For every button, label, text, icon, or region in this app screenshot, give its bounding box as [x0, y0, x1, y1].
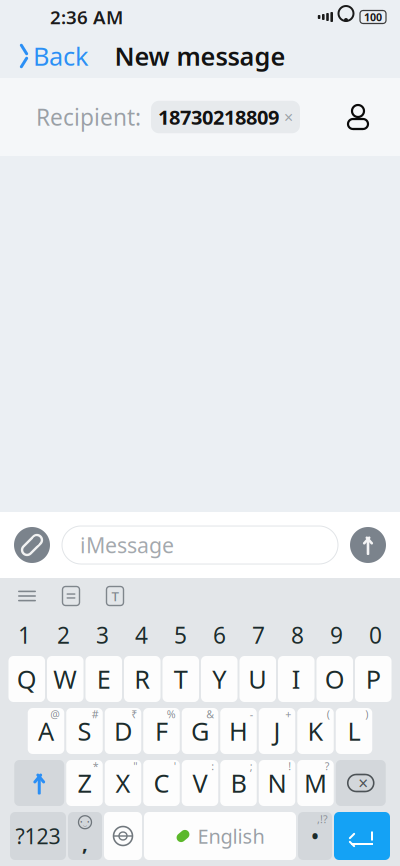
staticText: V: [192, 766, 207, 800]
staticText: ": [133, 759, 137, 773]
button[interactable]: ': [143, 760, 180, 806]
button[interactable]: Send: [346, 523, 390, 567]
button[interactable]: T: [162, 656, 199, 702]
button[interactable]: I: [278, 656, 314, 702]
staticText: 7: [252, 620, 265, 650]
button[interactable]: U: [239, 656, 276, 702]
staticText: Recipient:: [36, 102, 141, 132]
button[interactable]: Q: [8, 656, 45, 702]
button[interactable]: Back: [0, 33, 89, 79]
staticText: %: [167, 707, 176, 721]
staticText: 5: [174, 620, 187, 650]
staticText: E: [97, 662, 111, 696]
staticText: ×: [284, 106, 293, 128]
button[interactable]: 2: [45, 621, 82, 649]
staticText: J: [273, 714, 280, 748]
button[interactable]: Text editing: [102, 583, 128, 609]
staticText: A: [38, 714, 54, 748]
button[interactable]: W: [47, 656, 83, 702]
staticText: 8: [291, 620, 304, 650]
staticText: S: [77, 714, 91, 748]
button[interactable]: #: [66, 708, 103, 754]
button[interactable]: &: [182, 708, 218, 754]
staticText: T: [111, 587, 118, 605]
staticText: 9: [330, 620, 343, 650]
button[interactable]: Recipient field: [0, 78, 400, 156]
button[interactable]: Shift: [14, 760, 64, 806]
button[interactable]: R: [124, 656, 160, 702]
button[interactable]: ": [105, 760, 141, 806]
staticText: M: [304, 766, 327, 800]
staticText: T: [174, 662, 188, 696]
staticText: ?: [325, 759, 330, 773]
button[interactable]: P: [355, 656, 391, 702]
button[interactable]: 1: [6, 621, 43, 649]
staticText: ?123: [15, 822, 60, 850]
staticText: (: [327, 707, 330, 721]
button[interactable]: !: [259, 760, 295, 806]
staticText: *: [93, 759, 99, 773]
staticText: 18730218809: [158, 104, 279, 130]
staticText: ): [365, 707, 368, 721]
button[interactable]: -: [220, 708, 257, 754]
button[interactable]: Backspace: [336, 760, 386, 806]
staticText: 2:36 AM: [50, 5, 123, 29]
button[interactable]: Y: [201, 656, 237, 702]
staticText: -: [250, 707, 253, 721]
button[interactable]: 0: [357, 621, 394, 649]
button[interactable]: Message text field: [62, 526, 338, 564]
button[interactable]: 6: [201, 621, 238, 649]
staticText: 3: [96, 620, 109, 650]
staticText: +: [285, 707, 291, 721]
staticText: Z: [77, 766, 91, 800]
staticText: W: [53, 662, 77, 696]
button[interactable]: Keyboard menu: [14, 583, 40, 609]
button[interactable]: :: [182, 760, 218, 806]
staticText: X: [115, 766, 130, 800]
button[interactable]: ;: [220, 760, 257, 806]
button[interactable]: 8: [279, 621, 316, 649]
staticText: •: [311, 824, 318, 848]
staticText: Q: [17, 662, 37, 696]
button[interactable]: Space: [144, 812, 296, 860]
button[interactable]: Emoji and comma: [68, 812, 102, 860]
button[interactable]: %: [143, 708, 180, 754]
button[interactable]: ?: [297, 760, 334, 806]
button[interactable]: Symbols: [10, 812, 66, 860]
staticText: 4: [135, 620, 148, 650]
staticText: K: [307, 714, 323, 748]
staticText: 0: [369, 620, 382, 650]
staticText: B: [230, 766, 246, 800]
button[interactable]: Add attachment: [10, 523, 54, 567]
staticText: !: [288, 759, 291, 773]
staticText: N: [267, 766, 286, 800]
button[interactable]: 9: [318, 621, 355, 649]
staticText: P: [366, 662, 381, 696]
button[interactable]: 7: [240, 621, 277, 649]
staticText: 2: [57, 620, 70, 650]
button[interactable]: Return: [334, 812, 390, 860]
staticText: H: [229, 714, 248, 748]
button[interactable]: O: [316, 656, 353, 702]
staticText: New message: [114, 39, 285, 73]
button[interactable]: Clipboard: [58, 583, 84, 609]
staticText: @: [50, 707, 60, 721]
staticText: ,!?: [317, 812, 328, 826]
button[interactable]: *: [66, 760, 103, 806]
button[interactable]: ₹: [105, 708, 141, 754]
button[interactable]: Change language: [104, 812, 142, 860]
staticText: D: [114, 714, 132, 748]
button[interactable]: 5: [162, 621, 199, 649]
button[interactable]: (: [297, 708, 334, 754]
button[interactable]: 4: [123, 621, 160, 649]
button[interactable]: Period: [298, 812, 332, 860]
button[interactable]: 3: [84, 621, 121, 649]
button[interactable]: @: [28, 708, 64, 754]
staticText: •‿•: [80, 818, 90, 827]
button[interactable]: ): [336, 708, 372, 754]
staticText: L: [347, 714, 360, 748]
button[interactable]: E: [85, 656, 122, 702]
button[interactable]: +: [259, 708, 295, 754]
staticText: ₹: [131, 707, 137, 721]
staticText: I: [292, 662, 301, 696]
